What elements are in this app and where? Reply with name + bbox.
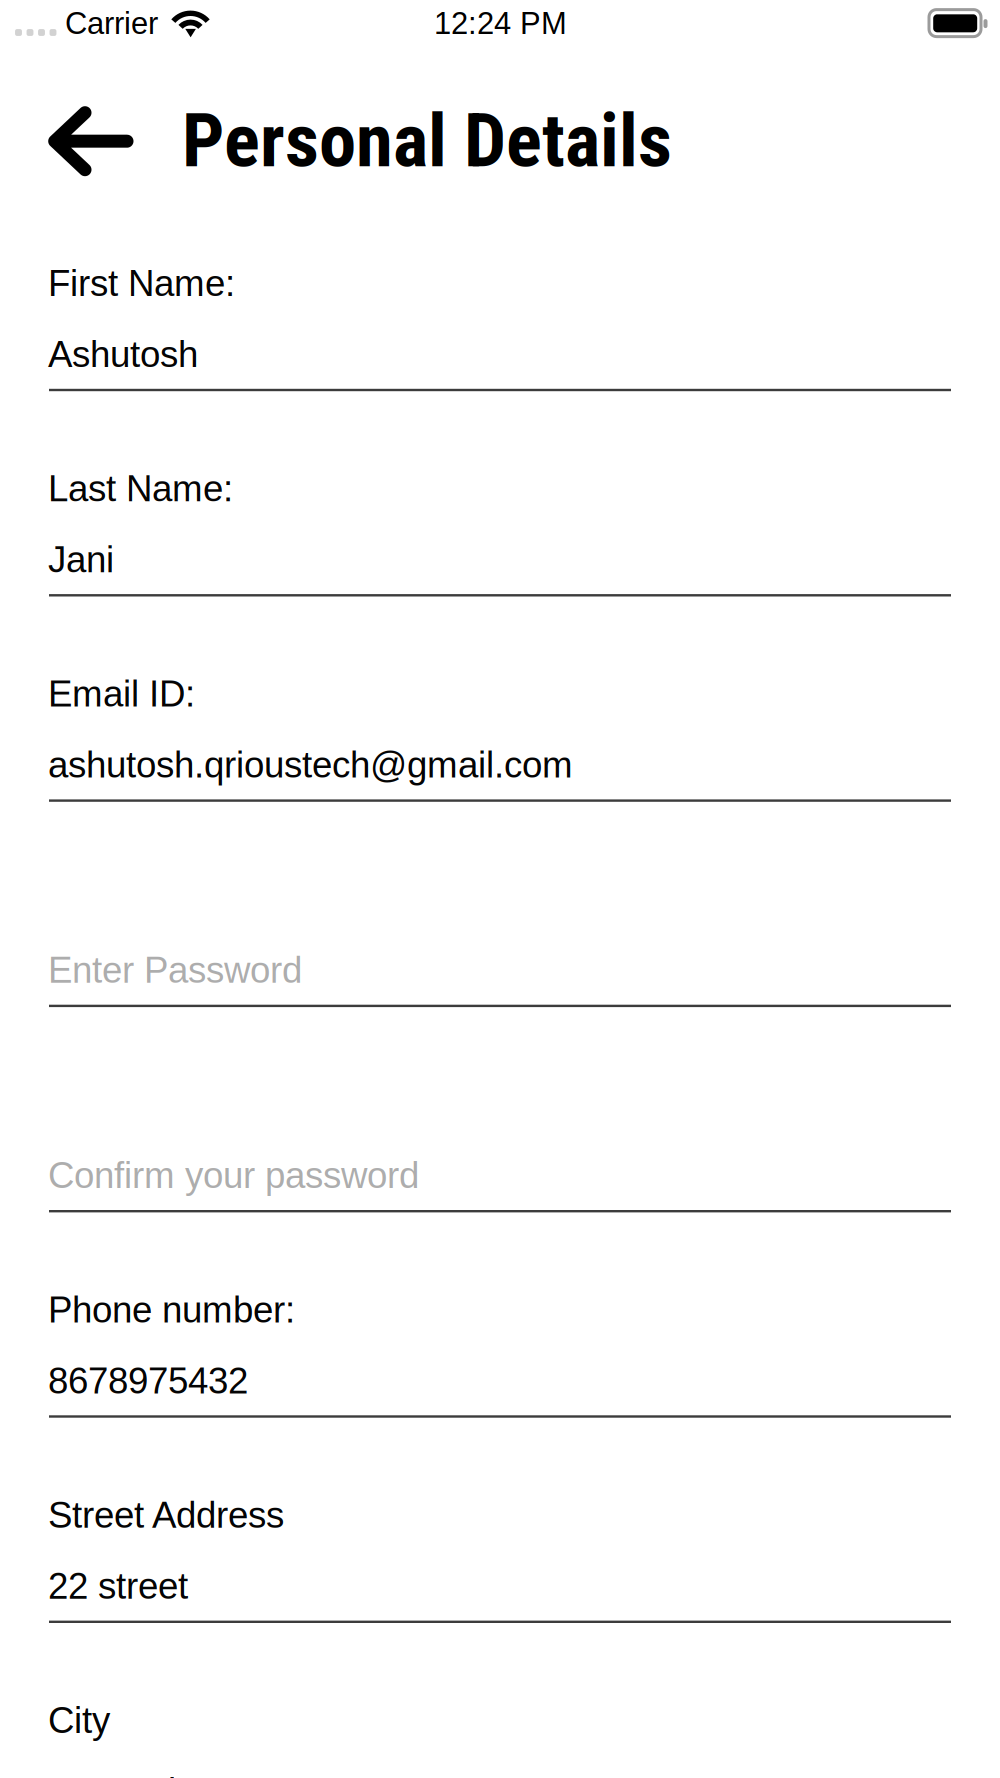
- button[interactable]: Phone number:: [49, 1211, 951, 1416]
- staticText: Ashutosh: [48, 334, 198, 375]
- staticText: Phone number:: [48, 1289, 295, 1330]
- staticText: 8678975432: [48, 1360, 248, 1401]
- staticText: Carrier: [65, 6, 158, 41]
- staticText: City: [48, 1700, 110, 1741]
- staticText: ashutosh.qrioustech@gmail.com: [48, 744, 573, 785]
- button[interactable]: Confirm your password: [49, 1006, 951, 1211]
- staticText: Last Name:: [48, 468, 233, 509]
- staticText: 12:24 PM: [434, 6, 567, 41]
- staticText: First Name:: [48, 263, 235, 304]
- staticText: Email ID:: [48, 673, 195, 714]
- button[interactable]: Email ID:: [49, 595, 951, 801]
- staticText: Jani: [48, 539, 114, 580]
- staticText: 22 street: [48, 1565, 188, 1606]
- button[interactable]: Street Address: [49, 1416, 951, 1622]
- button[interactable]: City: [49, 1622, 951, 1778]
- staticText: Asansol: [48, 1771, 176, 1778]
- staticText: Confirm your password: [48, 1155, 419, 1196]
- button[interactable]: Enter Password: [49, 801, 951, 1006]
- button[interactable]: Last Name:: [49, 390, 951, 595]
- staticText: Enter Password: [48, 950, 302, 991]
- staticText: Personal Details: [182, 97, 672, 184]
- button[interactable]: First Name:: [49, 185, 951, 390]
- staticText: Street Address: [48, 1494, 284, 1535]
- button[interactable]: Back: [48, 96, 140, 188]
